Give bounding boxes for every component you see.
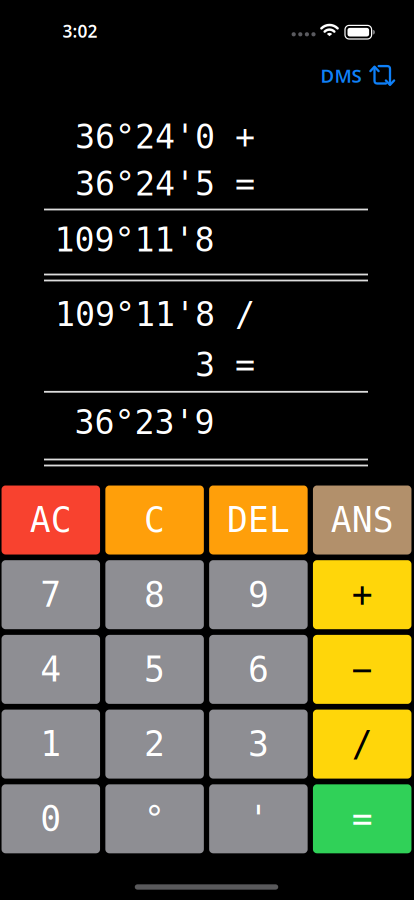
staticText: ANS [331,500,394,540]
staticText: DMS [320,63,361,88]
button[interactable]: / [313,710,411,779]
staticText: 109°11'8 [54,221,214,259]
staticText: / [352,724,373,764]
staticText: 0 [40,799,61,838]
button[interactable]: 9 [209,560,308,629]
staticText: 4 [40,650,61,689]
staticText: = [352,799,373,838]
staticText: 36°24'0 + [75,118,255,156]
staticText: AC [30,500,72,540]
button[interactable]: 1 [2,710,100,779]
button[interactable]: = [313,784,411,853]
staticText: 3:02 [62,19,97,42]
button[interactable]: 3 [209,710,308,779]
button[interactable]: C [105,485,204,554]
staticText: 3 [248,724,269,764]
button[interactable]: ' [209,784,308,853]
button[interactable]: ° [105,784,204,853]
staticText: 5 [144,650,165,689]
button[interactable]: + [313,560,411,629]
staticText: − [352,650,373,689]
button[interactable]: 7 [2,560,100,629]
button[interactable]: DEL [209,485,308,554]
staticText: 8 [144,575,165,614]
staticText: + [352,575,373,614]
button[interactable]: DMS [320,63,394,88]
staticText: 1 [40,724,61,764]
button[interactable]: 5 [105,635,204,704]
button[interactable]: 6 [209,635,308,704]
staticText: 2 [144,724,165,764]
button[interactable]: 2 [105,710,204,779]
staticText: DEL [227,500,290,540]
staticText: ° [144,799,165,838]
button[interactable]: 0 [2,784,100,853]
staticText: 36°23'9 [74,404,214,441]
button[interactable]: − [313,635,411,704]
button[interactable]: 4 [2,635,100,704]
staticText: 6 [248,650,269,689]
staticText: 109°11'8 / [55,296,255,333]
staticText: ' [248,799,269,838]
staticText: C [144,500,165,540]
staticText: 36°24'5 = [75,165,255,203]
button[interactable]: AC [2,485,100,554]
staticText: 9 [248,575,269,614]
staticText: 3 = [195,346,255,384]
staticText: 7 [40,575,61,614]
button[interactable]: 8 [105,560,204,629]
button[interactable]: ANS [313,485,411,554]
